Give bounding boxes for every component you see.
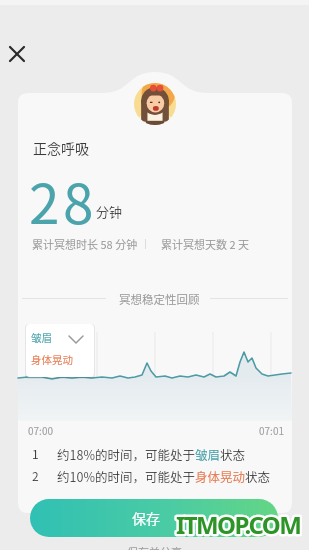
staticText: 约18%的时间，可能处于皱眉状态 (57, 445, 245, 463)
staticText: 2 (32, 467, 39, 484)
staticText: ITMOP.COM (176, 508, 301, 541)
staticText: ITMOP.COM (176, 508, 301, 541)
staticText: 冥想稳定性回顾 (119, 291, 200, 308)
staticText: 1 (32, 445, 39, 462)
staticText: 07:01 (259, 423, 284, 437)
button[interactable]: 皱眉 (26, 324, 94, 377)
staticText: 保存并分享 (127, 544, 182, 550)
staticText: 累计冥想时长 58 分钟 (32, 236, 138, 252)
button[interactable]: 保存 (30, 499, 278, 537)
staticText: 保存 (132, 508, 160, 528)
staticText: 07:00 (28, 423, 53, 437)
staticText: 正念呼吸 (33, 138, 89, 158)
staticText: 皱眉 (31, 330, 52, 345)
staticText: 28 (29, 160, 98, 240)
button[interactable] (2, 39, 32, 69)
staticText: 身体晃动 (31, 352, 73, 367)
staticText: 约10%的时间，可能处于身体晃动状态 (57, 467, 270, 485)
staticText: 分钟 (96, 202, 123, 221)
staticText: 累计冥想天数 2 天 (161, 236, 250, 252)
